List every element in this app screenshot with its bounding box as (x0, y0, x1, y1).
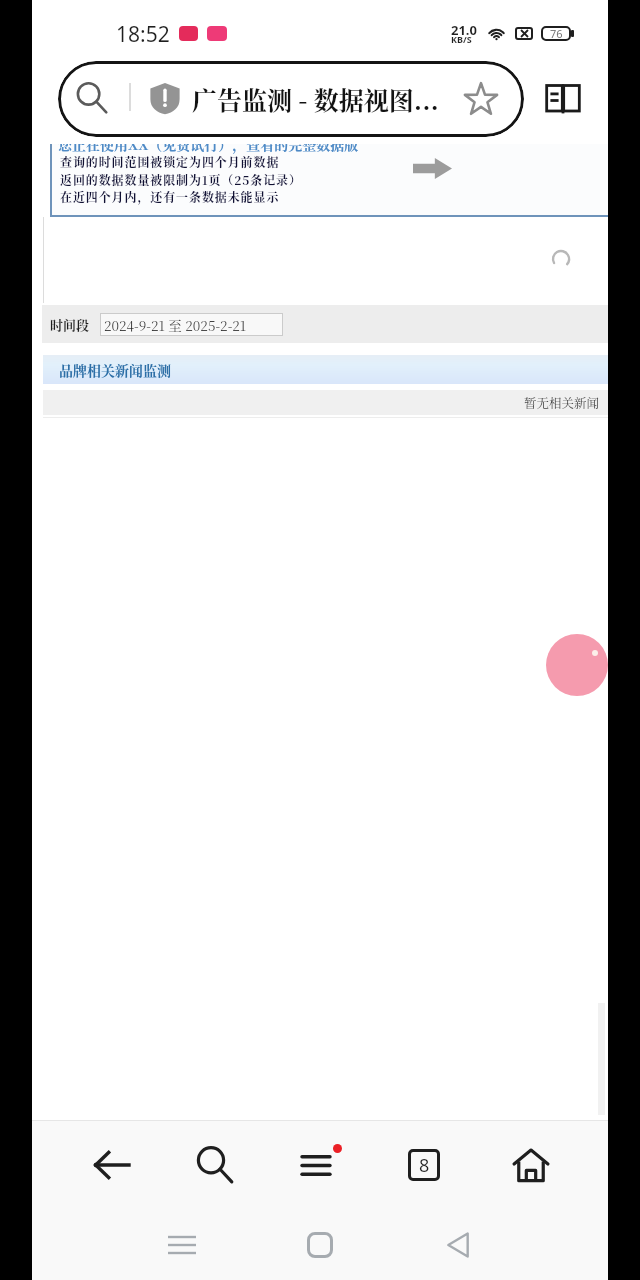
button[interactable]: Home (491, 1121, 571, 1209)
button[interactable]: Search (175, 1121, 255, 1209)
staticText: KB/S (451, 33, 472, 45)
staticText: 暂无相关新闻 (524, 394, 600, 412)
button[interactable]: 2024-9-21 至 2025-2-21 (100, 313, 283, 336)
staticText: 时间段 (50, 315, 90, 334)
staticText: 8 (419, 1153, 430, 1178)
button[interactable]: Reading mode (542, 78, 584, 120)
staticText: 18:52 (116, 20, 170, 49)
staticText: 品牌相关新闻监测 (59, 360, 171, 380)
button[interactable]: Menu (277, 1121, 357, 1209)
staticText: 76 (550, 26, 563, 41)
staticText: 广告监测 - 数据视图... (192, 81, 439, 117)
button[interactable]: Back (71, 1121, 151, 1209)
staticText: 查询的时间范围被锁定为四个月前数据 (60, 153, 280, 170)
staticText: 21.0 (451, 21, 477, 39)
button[interactable]: Tabs (384, 1121, 464, 1209)
button[interactable]: Assistant ball (546, 634, 608, 696)
staticText: 您正在使用XX（免费试行），查看的完整数据版 (58, 144, 359, 154)
button[interactable]: Recent apps (147, 1209, 217, 1280)
button[interactable]: Back (423, 1209, 493, 1280)
button[interactable]: 广告监测 - 数据视图... (58, 61, 524, 137)
staticText: 在近四个月内，还有一条数据未能显示 (60, 188, 280, 205)
button[interactable]: Home screen (285, 1209, 355, 1280)
staticText: 2024-9-21 至 2025-2-21 (104, 315, 247, 334)
staticText: 返回的数据数量被限制为1页（25条记录） (60, 171, 302, 188)
